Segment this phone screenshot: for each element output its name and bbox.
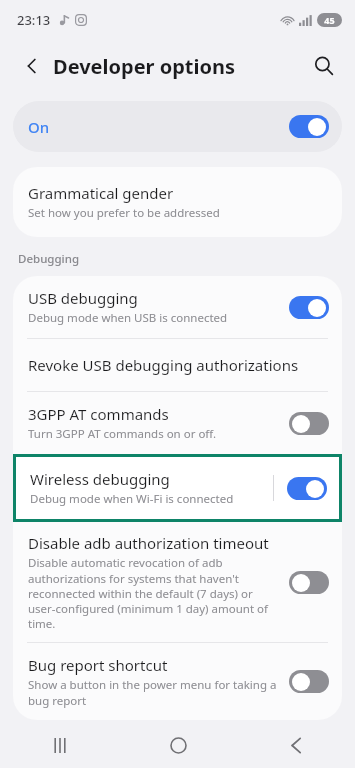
button[interactable]: On [13,101,342,152]
button[interactable]: Off [289,412,329,435]
button[interactable]: Bug report shortcut [13,643,342,720]
button[interactable]: Revoke USB debugging authorizations [13,339,342,391]
button[interactable]: Back [237,722,355,768]
staticText: Debug mode when Wi-Fi is connected [30,491,234,507]
button[interactable]: On [287,477,327,500]
staticText: Developer options [53,53,236,80]
staticText: Disable adb authorization timeout [28,533,269,553]
button[interactable]: Home [119,722,237,768]
button[interactable]: Off [289,571,329,594]
staticText: Grammatical gender [28,183,174,203]
staticText: Debug mode when USB is connected [28,310,228,326]
button[interactable]: Search [306,48,342,84]
staticText: 3GPP AT commands [28,404,169,424]
button[interactable]: USB debugging [13,276,342,338]
staticText: Bug report shortcut [28,655,168,675]
staticText: Debugging [18,251,80,267]
staticText: Show a button in the power menu for taki… [28,677,279,708]
button[interactable]: On [289,296,329,319]
staticText: USB debugging [28,288,138,308]
staticText: Wireless debugging [30,469,170,489]
button[interactable]: Recents [0,722,119,768]
button[interactable]: Wireless debugging [15,456,340,520]
button[interactable]: Off [289,670,329,693]
staticText: 45 [324,14,335,26]
staticText: Disable automatic revocation of adb auth… [28,555,279,631]
staticText: Set how you prefer to be addressed [28,205,220,221]
button[interactable]: Back [14,48,50,84]
button[interactable]: Disable adb authorization timeout [13,522,342,642]
button[interactable]: 3GPP AT commands [13,392,342,454]
button[interactable]: Grammatical gender [13,167,342,237]
staticText: Turn 3GPP AT commands on or off. [28,426,217,442]
staticText: 23:13 [17,11,51,29]
staticText: On [28,117,289,137]
button[interactable]: On [289,115,329,138]
staticText: Revoke USB debugging authorizations [28,355,299,375]
